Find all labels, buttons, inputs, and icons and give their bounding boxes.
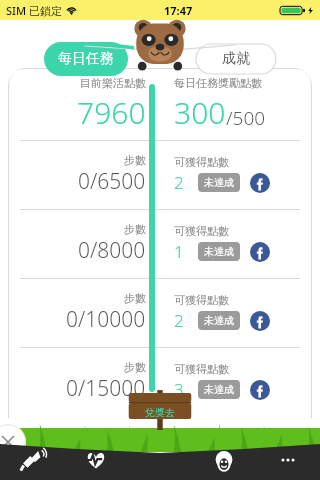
staticText: 7960 bbox=[77, 92, 146, 133]
staticText: 300 bbox=[174, 92, 226, 133]
staticText: 17:47 bbox=[164, 3, 193, 18]
button[interactable]: 成就 bbox=[196, 44, 276, 74]
staticText: 未達成 bbox=[204, 245, 234, 258]
staticText: 0/10000 bbox=[66, 305, 146, 334]
staticText: 步數 bbox=[124, 360, 146, 374]
staticText: 0/6500 bbox=[78, 167, 146, 196]
button[interactable]: More bbox=[256, 442, 320, 478]
button[interactable]: Pet bbox=[192, 442, 256, 478]
staticText: SIM 已鎖定 bbox=[6, 3, 62, 18]
button[interactable]: Share on Facebook bbox=[250, 242, 270, 262]
staticText: 目前樂活點數 bbox=[80, 76, 146, 90]
button[interactable]: 步數 bbox=[8, 347, 312, 416]
button[interactable]: Close bbox=[0, 424, 26, 460]
staticText: 可獲得點數 bbox=[174, 293, 229, 307]
button[interactable]: 步數 bbox=[8, 140, 312, 209]
staticText: 0/15000 bbox=[66, 374, 146, 403]
staticText: 3 bbox=[174, 378, 184, 401]
button[interactable]: Announcements bbox=[0, 442, 64, 478]
staticText: 未達成 bbox=[204, 314, 234, 327]
staticText: 可獲得點數 bbox=[174, 224, 229, 238]
button[interactable]: 未達成 bbox=[204, 176, 234, 189]
staticText: 可獲得點數 bbox=[174, 362, 229, 376]
staticText: 未達成 bbox=[204, 383, 234, 396]
staticText: 每日任務獎勵點數 bbox=[174, 76, 262, 90]
staticText: 步數 bbox=[124, 222, 146, 236]
button[interactable]: Share on Facebook bbox=[250, 173, 270, 193]
staticText: 步數 bbox=[124, 291, 146, 305]
button[interactable]: 未達成 bbox=[204, 245, 234, 258]
staticText: 兌獎去 bbox=[145, 406, 175, 419]
button[interactable]: 未達成 bbox=[204, 314, 234, 327]
staticText: 2 bbox=[174, 171, 184, 194]
staticText: 成就 bbox=[222, 50, 250, 68]
staticText: 可獲得點數 bbox=[174, 155, 229, 169]
button[interactable]: 步數 bbox=[8, 209, 312, 278]
button[interactable]: 步數 bbox=[8, 278, 312, 347]
staticText: 步數 bbox=[124, 153, 146, 167]
staticText: /500 bbox=[226, 105, 266, 131]
button[interactable]: 每日任務 bbox=[44, 42, 128, 76]
staticText: 0/8000 bbox=[78, 236, 146, 265]
button[interactable]: Share on Facebook bbox=[250, 311, 270, 331]
staticText: 未達成 bbox=[204, 176, 234, 189]
button[interactable]: Share on Facebook bbox=[250, 380, 270, 400]
button[interactable]: Health bbox=[64, 442, 128, 478]
staticText: 每日任務 bbox=[58, 50, 114, 68]
button[interactable]: 未達成 bbox=[204, 383, 234, 396]
staticText: 1 bbox=[174, 240, 184, 263]
button[interactable]: 兌獎去 bbox=[126, 388, 194, 430]
staticText: 2 bbox=[174, 309, 184, 332]
